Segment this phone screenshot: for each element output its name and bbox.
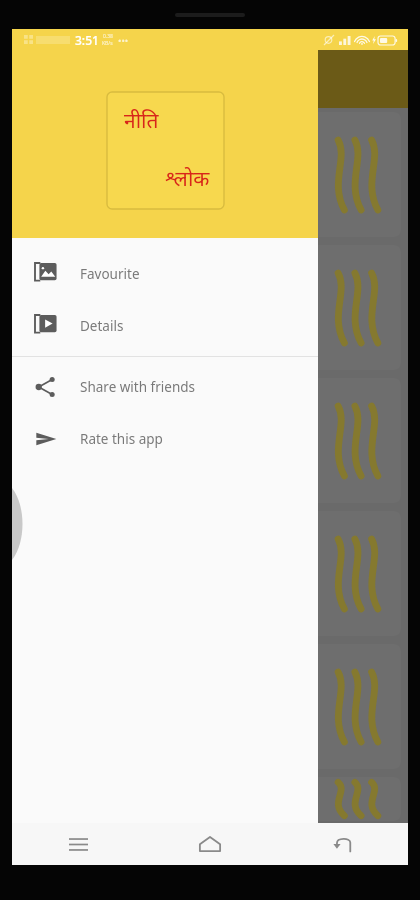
button[interactable]: स bbox=[19, 644, 401, 769]
staticText: ां bbox=[29, 299, 41, 317]
button[interactable]: Recents bbox=[12, 823, 144, 865]
button[interactable]: स bbox=[19, 378, 401, 503]
button[interactable]: ां bbox=[19, 511, 401, 636]
staticText: KB/s bbox=[102, 40, 113, 47]
staticText: श्लोक bbox=[165, 164, 210, 193]
button[interactable]: स bbox=[19, 112, 401, 237]
staticText: Favourite bbox=[80, 265, 140, 283]
staticText: ••• bbox=[118, 34, 129, 46]
staticText: Share with friends bbox=[80, 378, 196, 396]
button[interactable]: नीति bbox=[12, 29, 318, 238]
button[interactable]: Details bbox=[12, 300, 318, 352]
staticText: Rate this app bbox=[80, 430, 163, 448]
button[interactable]: ां bbox=[19, 777, 401, 821]
button[interactable]: Rate this app bbox=[12, 413, 318, 465]
staticText: नीति bbox=[124, 106, 159, 135]
button[interactable]: Share with friends bbox=[12, 361, 318, 413]
button[interactable]: Home bbox=[144, 823, 276, 865]
staticText: 0.38 bbox=[103, 33, 113, 40]
staticText: 3:51 bbox=[75, 32, 99, 48]
button[interactable]: ां bbox=[19, 245, 401, 370]
button[interactable]: Back bbox=[276, 823, 408, 865]
staticText: स bbox=[29, 432, 38, 450]
staticText: Details bbox=[80, 317, 124, 335]
button[interactable]: Favourite bbox=[12, 248, 318, 300]
